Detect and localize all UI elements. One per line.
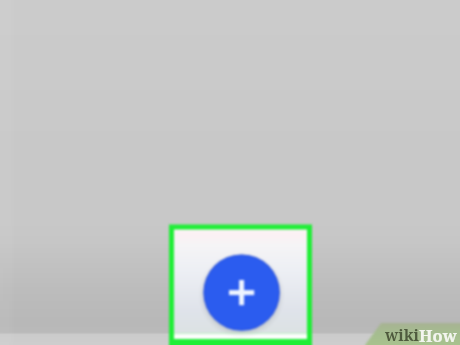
button[interactable]: Add <box>203 254 280 331</box>
staticText: How <box>419 324 457 345</box>
staticText: wiki <box>385 324 420 345</box>
